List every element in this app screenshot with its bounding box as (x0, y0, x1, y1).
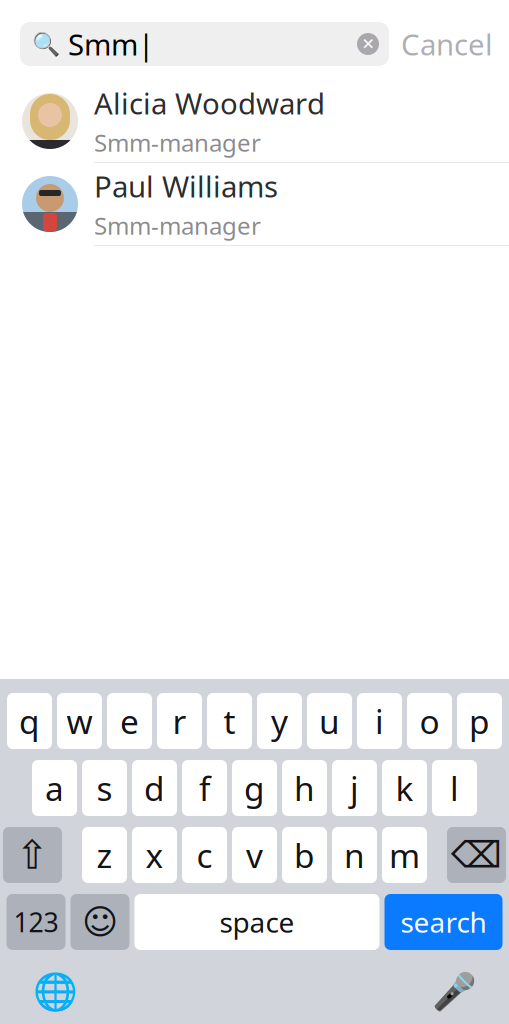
staticText: n (344, 833, 365, 877)
button[interactable]: Dictation (429, 970, 479, 1014)
button[interactable]: Cancel (401, 22, 493, 66)
staticText: m (389, 833, 420, 877)
staticText: s (96, 766, 112, 810)
staticText: space (219, 903, 294, 941)
staticText: d (144, 766, 165, 810)
button[interactable]: c (182, 827, 227, 883)
button[interactable]: a (32, 760, 77, 816)
button[interactable]: m (382, 827, 427, 883)
staticText: 🌐 (32, 971, 77, 1012)
staticText: Alicia Woodward (94, 84, 325, 123)
staticText: v (246, 833, 263, 877)
button[interactable]: f (182, 760, 227, 816)
button[interactable]: v (232, 827, 277, 883)
staticText: ✕ (361, 35, 374, 53)
button[interactable]: w (57, 693, 102, 749)
button[interactable]: Paul Williams (0, 163, 509, 246)
button[interactable]: Clear search (351, 27, 385, 61)
button[interactable]: 123 (6, 894, 65, 950)
staticText: ⌫ (451, 835, 502, 875)
button[interactable]: Change keyboard (30, 970, 80, 1014)
staticText: a (45, 766, 64, 810)
staticText: k (395, 766, 413, 810)
button[interactable]: j (332, 760, 377, 816)
button[interactable]: Emoji (70, 894, 129, 950)
staticText: e (120, 699, 139, 743)
button[interactable]: t (207, 693, 252, 749)
button[interactable]: b (282, 827, 327, 883)
button[interactable]: h (282, 760, 327, 816)
staticText: g (244, 766, 265, 810)
button[interactable]: o (407, 693, 452, 749)
staticText: Paul Williams (94, 167, 278, 206)
staticText: Smm-manager (94, 209, 261, 241)
button[interactable]: k (382, 760, 427, 816)
staticText: b (294, 833, 315, 877)
staticText: Smm| (68, 24, 154, 63)
button[interactable]: e (107, 693, 152, 749)
staticText: u (319, 699, 340, 743)
button[interactable]: r (157, 693, 202, 749)
button[interactable]: y (257, 693, 302, 749)
button[interactable]: z (82, 827, 127, 883)
button[interactable]: Shift (3, 827, 62, 883)
button[interactable]: g (232, 760, 277, 816)
button[interactable]: x (132, 827, 177, 883)
button[interactable]: Delete (447, 827, 506, 883)
staticText: Smm-manager (94, 126, 261, 158)
staticText: 🎤 (431, 971, 476, 1012)
staticText: 🔍 (32, 31, 60, 57)
button[interactable]: s (82, 760, 127, 816)
staticText: p (469, 699, 490, 743)
button[interactable]: q (7, 693, 52, 749)
staticText: z (96, 833, 112, 877)
staticText: c (196, 833, 212, 877)
staticText: 123 (13, 904, 58, 940)
staticText: t (223, 699, 235, 743)
staticText: ⇧ (15, 832, 49, 878)
staticText: w (66, 699, 92, 743)
button[interactable]: p (457, 693, 502, 749)
button[interactable]: d (132, 760, 177, 816)
staticText: search (400, 903, 486, 941)
staticText: y (271, 699, 288, 743)
staticText: f (199, 766, 210, 810)
staticText: q (19, 699, 40, 743)
button[interactable]: l (432, 760, 477, 816)
staticText: j (350, 766, 359, 810)
staticText: x (145, 833, 163, 877)
button[interactable]: search (384, 894, 502, 950)
staticText: i (375, 699, 384, 743)
button[interactable]: space (134, 894, 379, 950)
staticText: o (419, 699, 439, 743)
button[interactable]: i (357, 693, 402, 749)
staticText: l (450, 766, 459, 810)
button[interactable]: Alicia Woodward (0, 80, 509, 163)
staticText: Cancel (401, 24, 493, 63)
staticText: ☺ (82, 902, 118, 942)
button[interactable]: n (332, 827, 377, 883)
staticText: r (172, 699, 186, 743)
staticText: h (294, 766, 315, 810)
button[interactable]: u (307, 693, 352, 749)
